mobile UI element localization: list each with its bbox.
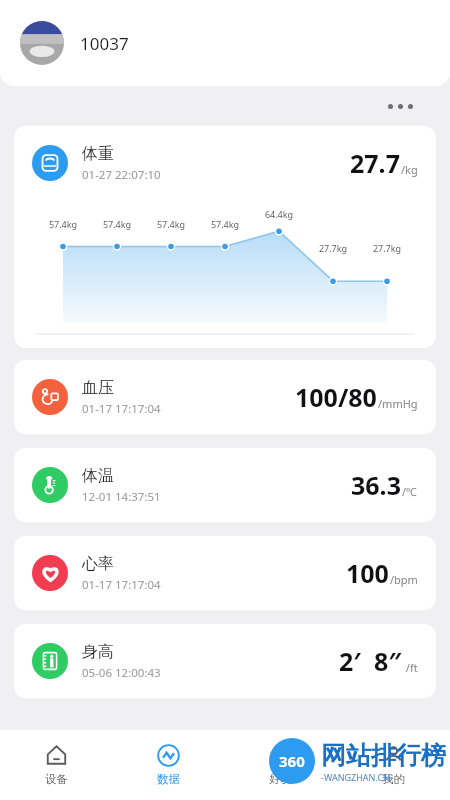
staticText: 身高 [82,642,114,662]
staticText: 设备 [45,772,68,786]
staticText: 64.4kg [252,208,306,220]
staticText: 12-01 14:37:51 [82,489,161,505]
staticText: 10037 [80,32,129,55]
staticText: /℃ [402,484,418,499]
staticText: /kg [401,162,418,177]
button[interactable]: 我的 [337,730,450,800]
staticText: 01-17 17:17:04 [82,577,161,593]
staticText: 05-06 12:00:43 [82,665,161,681]
staticText: 网站排行榜 [321,740,446,771]
button[interactable]: More options [380,86,420,126]
button[interactable]: 设备 [0,730,112,800]
staticText: 心率 [82,554,114,574]
button[interactable]: 数据 [112,730,224,800]
staticText: /mmHg [378,396,418,411]
button[interactable]: 10037 [0,0,450,86]
staticText: 57.4kg [198,218,252,230]
button[interactable]: 心率 [14,536,436,610]
staticText: /bpm [390,572,418,587]
button[interactable]: 好友 [224,730,337,800]
staticText: 57.4kg [36,218,90,230]
staticText: 100/80 [295,380,377,414]
staticText: 36.3 [351,468,401,502]
staticText: 100 [346,556,389,590]
button[interactable]: 体温 [14,448,436,522]
staticText: 27.7kg [306,242,360,254]
staticText: 27.7 [350,146,400,180]
staticText: 27.7kg [360,242,414,254]
staticText: 2′ 8″ [339,644,402,678]
staticText: 57.4kg [90,218,144,230]
staticText: 数据 [157,772,180,786]
staticText: /ft [403,660,418,675]
staticText: 我的 [382,772,405,786]
staticText: 好友 [269,772,292,786]
staticText: 01-27 22:07:10 [82,167,161,183]
staticText: 01-17 17:17:04 [82,401,161,417]
staticText: 360 [279,751,305,771]
button[interactable]: 体重 [14,126,436,348]
staticText: 血压 [82,378,114,398]
staticText: 57.4kg [144,218,198,230]
staticText: 体重 [82,144,114,164]
button[interactable]: 血压 [14,360,436,434]
button[interactable]: 身高 [14,624,436,698]
staticText: -WANGZHAN.CN- [321,771,393,783]
staticText: 体温 [82,466,114,486]
